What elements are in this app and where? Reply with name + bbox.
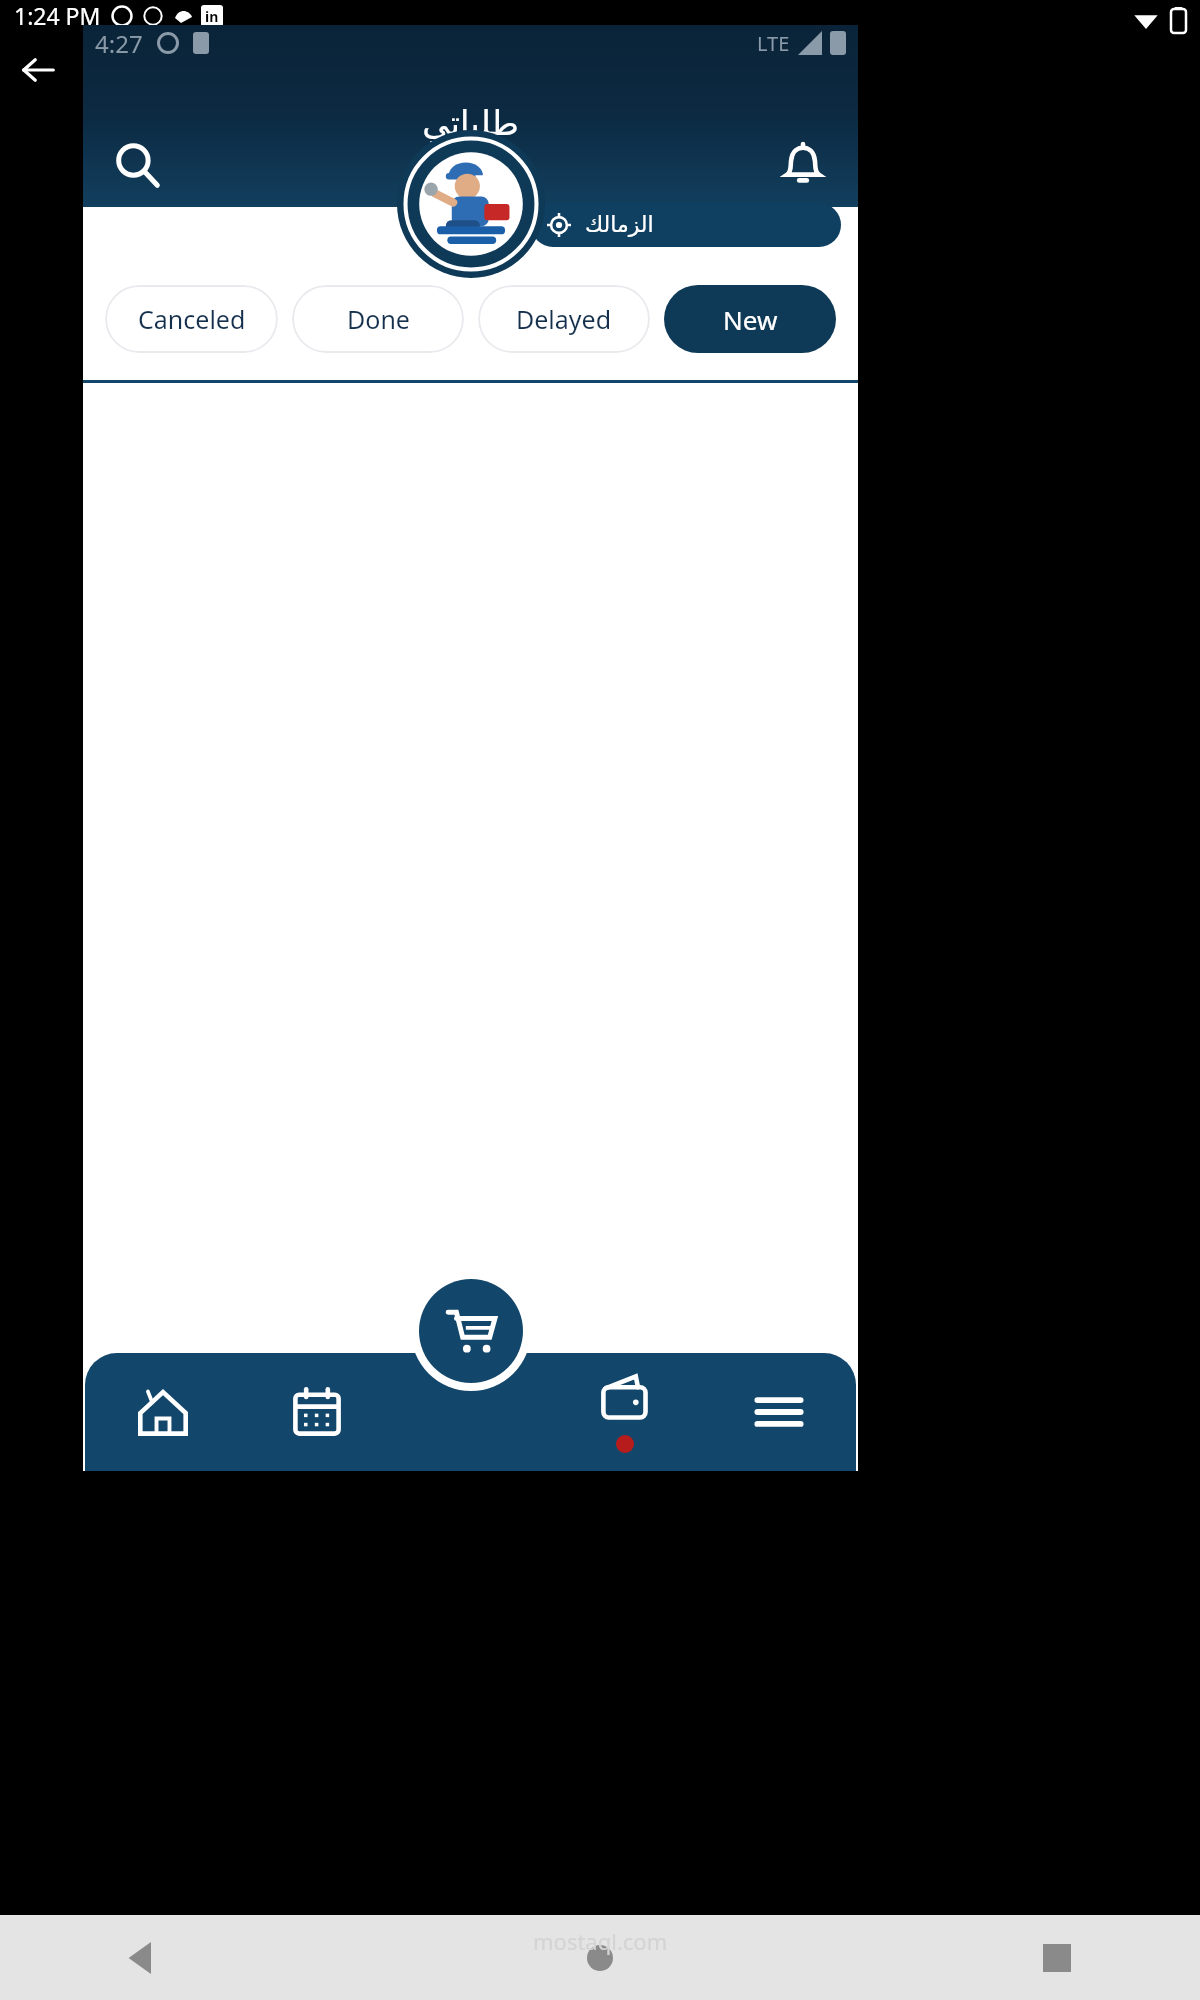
button[interactable]: Back: [10, 42, 66, 98]
staticText: Canceled: [138, 302, 246, 336]
staticText: LTE: [757, 30, 790, 57]
button[interactable]: Notifications: [762, 125, 844, 207]
button[interactable]: Delayed: [478, 285, 650, 353]
button[interactable]: Home: [85, 1353, 240, 1471]
button[interactable]: Done: [292, 285, 464, 353]
staticText: 4:27: [95, 27, 143, 60]
staticText: الزمالك: [585, 212, 654, 238]
staticText: Done: [347, 302, 410, 336]
button[interactable]: Recents: [1024, 1925, 1090, 1991]
staticText: 1:24 PM: [14, 0, 101, 31]
button[interactable]: Home: [567, 1925, 633, 1991]
staticText: طلباتي: [422, 103, 519, 143]
button[interactable]: Canceled: [105, 285, 278, 353]
button[interactable]: Cart: [411, 1271, 531, 1391]
button[interactable]: Back: [110, 1925, 176, 1991]
staticText: New: [723, 302, 778, 337]
button[interactable]: Search: [97, 125, 179, 207]
staticText: Delayed: [516, 302, 612, 336]
button[interactable]: Wallet: [548, 1353, 702, 1471]
other: Logo: [397, 130, 545, 278]
staticText: in: [205, 7, 219, 26]
staticText: mostaql.com: [533, 1926, 668, 1956]
button[interactable]: Menu: [702, 1353, 856, 1471]
button[interactable]: New: [664, 285, 836, 353]
button[interactable]: الزمالك: [531, 203, 841, 247]
button[interactable]: Calendar: [240, 1353, 394, 1471]
